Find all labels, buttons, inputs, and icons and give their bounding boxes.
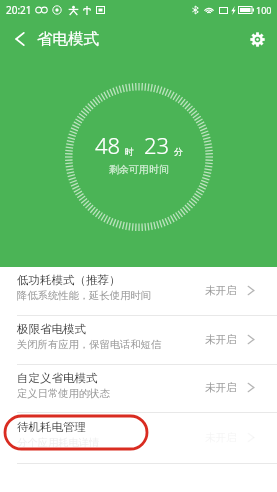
staticText: 低功耗模式（推荐） bbox=[17, 273, 121, 287]
staticText: 降低系统性能，延长使用时间 bbox=[17, 289, 151, 302]
staticText: 待机耗电管理 bbox=[17, 420, 86, 434]
button[interactable]: 低功耗模式（推荐） bbox=[0, 267, 277, 316]
staticText: 未开启 bbox=[205, 381, 237, 394]
staticText: 分 bbox=[174, 146, 183, 157]
button[interactable]: Back bbox=[5, 24, 34, 53]
button[interactable]: 待机耗电管理 bbox=[0, 413, 277, 464]
staticText: 20:21 bbox=[6, 3, 32, 17]
button[interactable]: Settings bbox=[243, 25, 271, 53]
staticText: 48 bbox=[95, 130, 121, 160]
staticText: 极限省电模式 bbox=[17, 322, 86, 336]
staticText: 关闭所有应用，保留电话和短信 bbox=[17, 338, 162, 351]
staticText: 时 bbox=[125, 146, 134, 157]
staticText: 100 bbox=[256, 4, 272, 16]
staticText: 未开启 bbox=[205, 333, 237, 346]
staticText: 省电模式 bbox=[37, 29, 99, 49]
staticText: 未开启 bbox=[205, 431, 237, 444]
staticText: 分个应用耗电详情 bbox=[17, 436, 100, 449]
button[interactable]: 极限省电模式 bbox=[0, 316, 277, 365]
staticText: 定义日常使用的状态 bbox=[17, 387, 110, 400]
button[interactable]: 自定义省电模式 bbox=[0, 365, 277, 413]
staticText: 剩余可用时间 bbox=[109, 163, 169, 176]
staticText: 未开启 bbox=[205, 284, 237, 297]
staticText: 自定义省电模式 bbox=[17, 371, 98, 385]
staticText: 23 bbox=[144, 130, 170, 160]
